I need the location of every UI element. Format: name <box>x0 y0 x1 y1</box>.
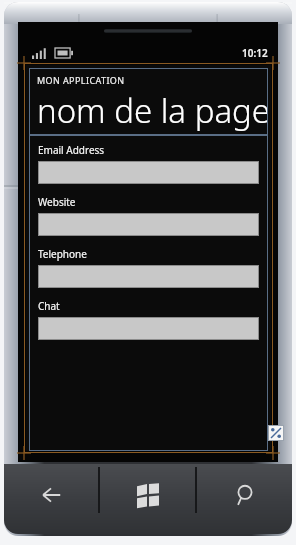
staticText: 10:12 <box>242 46 268 60</box>
button[interactable]: MON APPLICATION <box>29 68 268 135</box>
button[interactable]: Telephone <box>38 247 259 299</box>
staticText: nom de la page <box>37 88 268 133</box>
button[interactable]: Website <box>38 195 259 247</box>
staticText: Email Address <box>38 143 105 157</box>
staticText: Telephone <box>38 247 87 261</box>
staticText: Website <box>38 195 76 209</box>
other: Battery <box>55 48 73 58</box>
button[interactable]: Email Address <box>38 143 259 195</box>
other: Signal strength <box>32 48 48 59</box>
button[interactable]: Search <box>197 464 292 534</box>
staticText: Chat <box>38 299 60 313</box>
button[interactable]: Back <box>4 464 98 534</box>
button[interactable]: Chat <box>38 299 259 351</box>
staticText: MON APPLICATION <box>37 74 125 86</box>
button[interactable]: Start <box>100 464 195 534</box>
